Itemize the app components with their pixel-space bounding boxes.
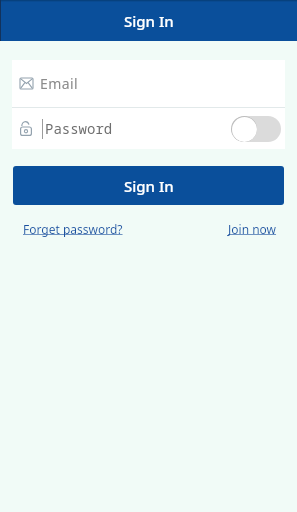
button[interactable]: Forget password?: [23, 221, 123, 237]
staticText: Sign In: [124, 176, 174, 196]
button[interactable]: Join now: [228, 221, 277, 237]
staticText: Password: [45, 119, 113, 138]
button[interactable]: Sign In: [13, 166, 284, 205]
staticText: Sign In: [124, 11, 174, 31]
button[interactable]: Password: [12, 108, 285, 149]
button[interactable]: Email: [12, 60, 285, 107]
staticText: Email: [40, 74, 78, 93]
button[interactable]: [231, 116, 281, 142]
